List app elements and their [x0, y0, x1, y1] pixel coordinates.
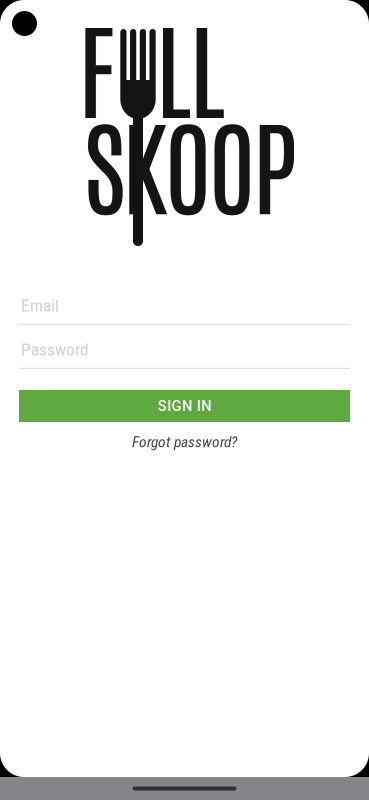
staticText: Email [21, 295, 59, 316]
staticText: F [78, 0, 116, 133]
staticText: Forgot password? [132, 433, 237, 451]
staticText: SIGN IN [158, 397, 211, 415]
button[interactable]: Forgot password? [19, 433, 350, 451]
button[interactable]: Password [19, 334, 350, 369]
staticText: Password [21, 339, 89, 360]
button[interactable]: Email [19, 290, 350, 325]
button[interactable]: SIGN IN [19, 390, 350, 422]
staticText: SKOOP [84, 95, 297, 229]
staticText: LL [155, 0, 225, 133]
